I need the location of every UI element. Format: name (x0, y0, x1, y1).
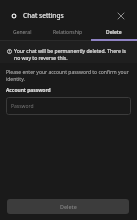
staticText: Password (11, 103, 34, 110)
button[interactable]: Password (6, 97, 131, 115)
button[interactable]: Close (112, 7, 129, 24)
staticText: Account password (6, 87, 51, 94)
button[interactable]: General (0, 24, 45, 41)
staticText: General (13, 29, 32, 36)
staticText: Your chat will be permanently deleted. T… (14, 48, 130, 62)
staticText: Please enter your account password to co… (6, 69, 131, 83)
button[interactable]: Delete (7, 199, 129, 214)
staticText: Delete (106, 29, 122, 36)
staticText: Delete (60, 203, 77, 210)
staticText: Relationship (53, 29, 83, 36)
button[interactable]: Delete (91, 24, 137, 41)
button[interactable]: Relationship (45, 24, 91, 41)
staticText: Chat settings (23, 11, 64, 20)
